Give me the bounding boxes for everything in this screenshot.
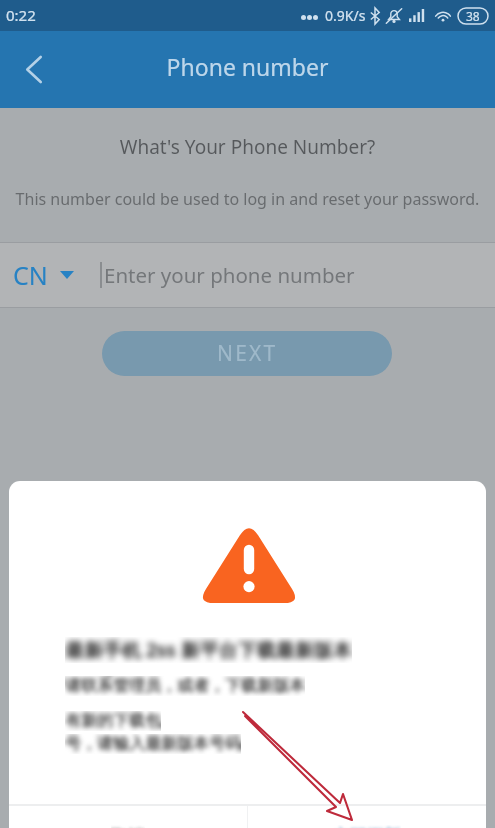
button[interactable]: NEXT bbox=[102, 331, 392, 376]
staticText: CN bbox=[13, 258, 48, 292]
staticText: NEXT bbox=[217, 339, 278, 368]
button[interactable]: 立即更新 bbox=[248, 806, 486, 828]
staticText: 0.9K/s bbox=[325, 6, 366, 25]
staticText: 0:22 bbox=[6, 5, 36, 25]
staticText: 最新手机 2ss 新平台下载最新版本 bbox=[65, 637, 352, 663]
staticText: 有新的下载包 bbox=[65, 711, 161, 731]
button[interactable]: CN bbox=[0, 243, 88, 307]
staticText: 号，请输入最新版本号码 bbox=[65, 734, 241, 754]
staticText: 立即更新 bbox=[333, 825, 401, 828]
staticText: This number could be used to log in and … bbox=[0, 188, 495, 210]
staticText: What's Your Phone Number? bbox=[0, 134, 495, 160]
staticText: Phone number bbox=[0, 51, 495, 82]
button[interactable]: Back bbox=[6, 41, 62, 97]
staticText: Enter your phone number bbox=[104, 261, 355, 289]
staticText: 38 bbox=[466, 8, 480, 24]
staticText: 取消 bbox=[111, 825, 145, 828]
staticText: 请联系管理员，或者，下载新版本 bbox=[65, 676, 305, 696]
